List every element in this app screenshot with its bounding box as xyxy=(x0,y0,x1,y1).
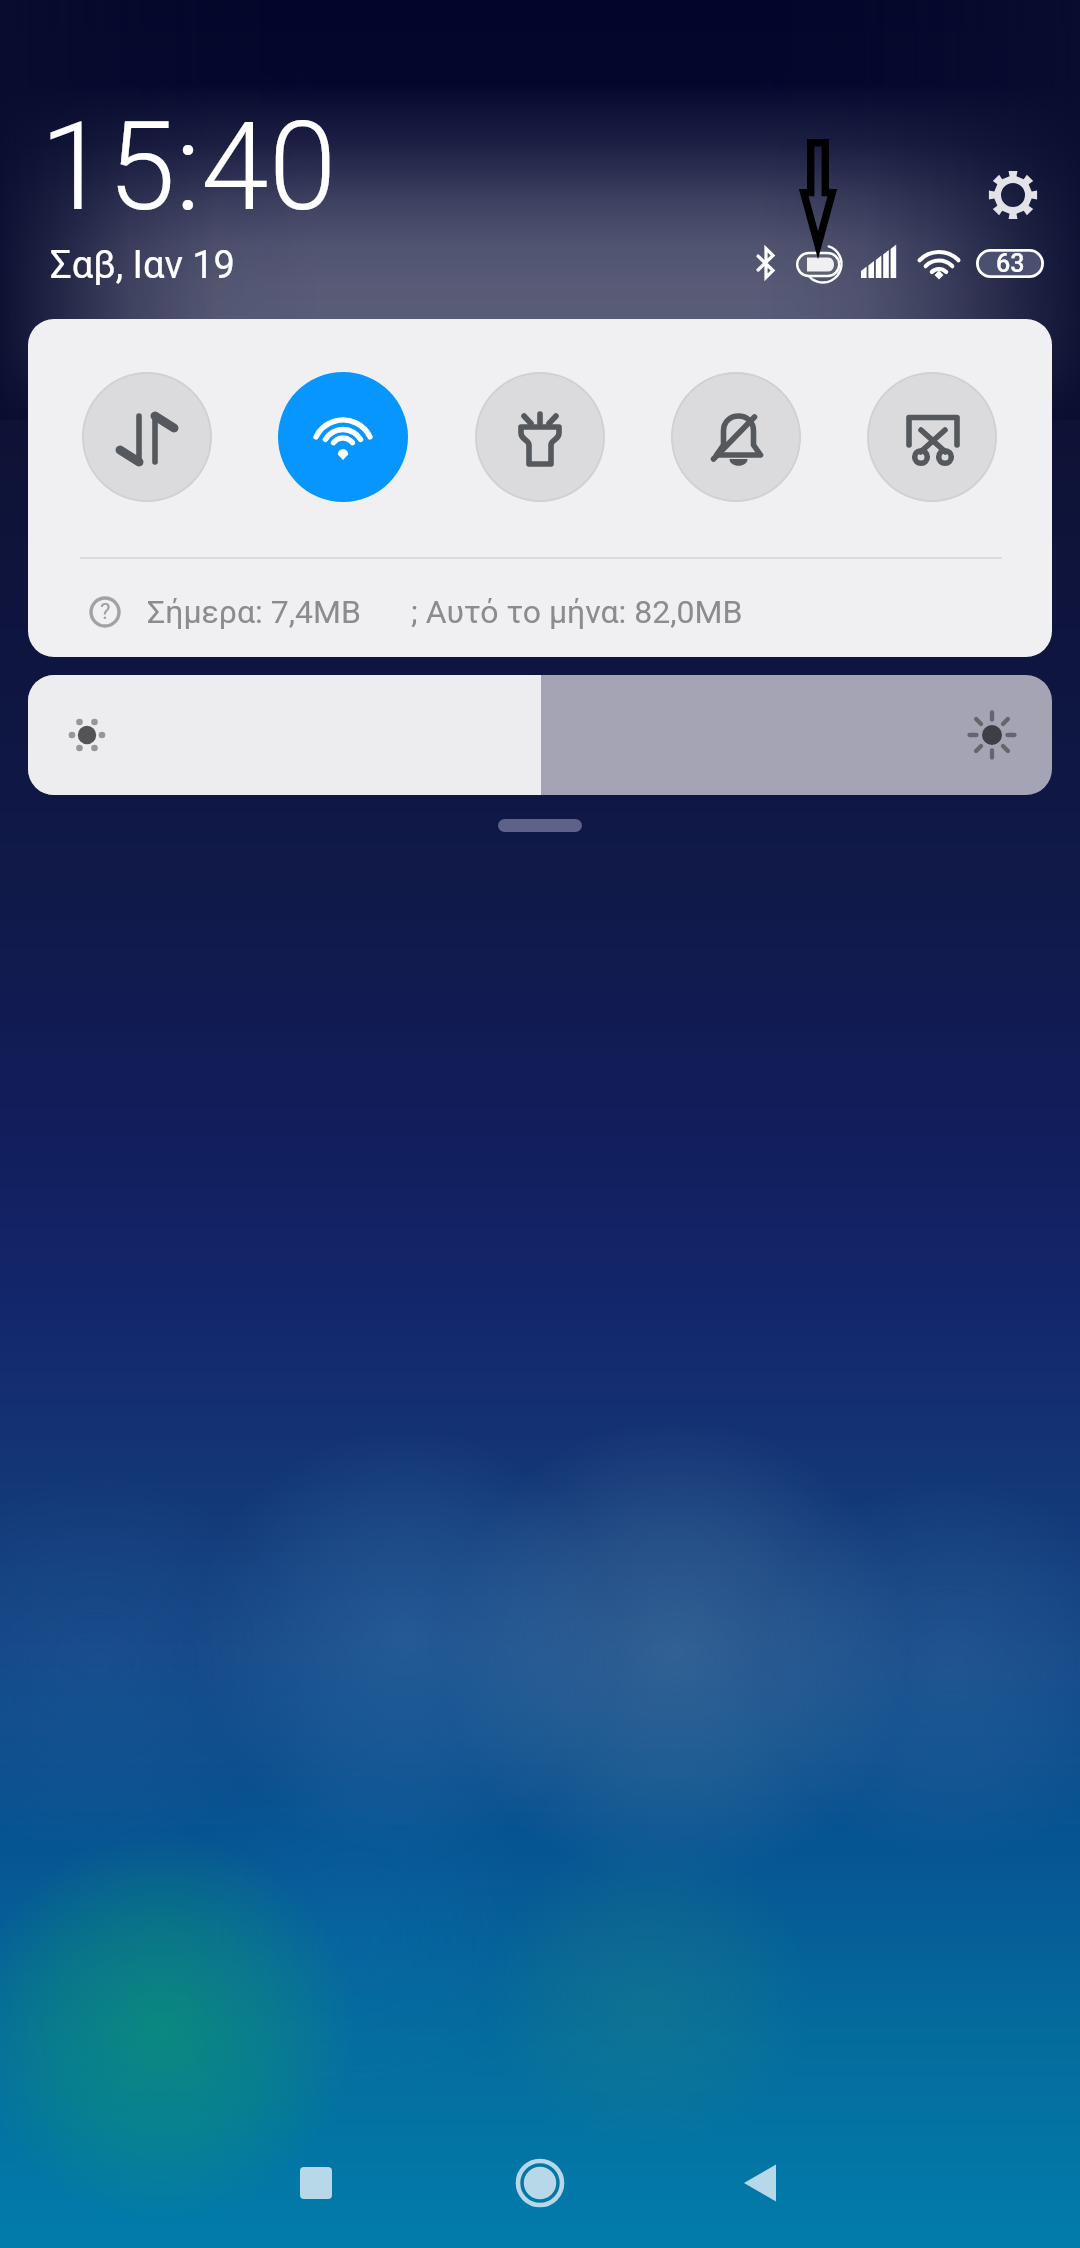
staticText: 63 xyxy=(996,249,1025,278)
button[interactable]: Home xyxy=(504,2147,576,2219)
button[interactable]: Silent mode xyxy=(671,372,801,502)
button[interactable]: Brightness xyxy=(28,675,1052,795)
staticText: Σήμερα: 7,4MB xyxy=(147,593,361,631)
button[interactable]: Wi-Fi xyxy=(278,372,408,502)
staticText: ; Αυτό το μήνα: 82,0MB xyxy=(411,593,743,631)
button[interactable]: Settings xyxy=(988,170,1038,220)
staticText: ? xyxy=(100,599,111,625)
staticText: Σαβ, Ιαν 19 xyxy=(50,243,235,288)
button[interactable]: Recents xyxy=(280,2147,352,2219)
button[interactable]: Flashlight xyxy=(475,372,605,502)
button[interactable]: Mobile data xyxy=(82,372,212,502)
staticText: 15:40 xyxy=(40,96,337,239)
button[interactable]: Screenshot xyxy=(867,372,997,502)
button[interactable]: Back xyxy=(724,2147,796,2219)
